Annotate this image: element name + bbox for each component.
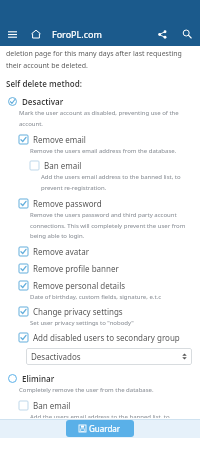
button[interactable]: Remove password bbox=[6, 197, 194, 210]
staticText: Remove the users password and third part… bbox=[30, 211, 186, 240]
button[interactable]: Guardar bbox=[66, 420, 134, 437]
staticText: Self delete method: bbox=[6, 78, 82, 89]
staticText: Set user privacy settings to "nobody" bbox=[30, 319, 186, 327]
button[interactable]: Remove email bbox=[6, 133, 194, 146]
button[interactable]: Menu bbox=[0, 22, 24, 46]
button[interactable]: Share bbox=[150, 22, 174, 46]
staticText: Date of birthday, custom fields, signatu… bbox=[30, 293, 186, 301]
staticText: Ban email bbox=[44, 160, 82, 171]
staticText: Eliminar bbox=[22, 373, 55, 384]
staticText: Add the users email address to the banne… bbox=[41, 173, 186, 192]
staticText: Desactivados bbox=[31, 351, 81, 362]
button[interactable]: Remove profile banner bbox=[6, 262, 194, 275]
staticText: Change privacy settings bbox=[33, 306, 123, 317]
staticText: deletion page for this many days after l… bbox=[6, 49, 194, 70]
staticText: Add disabled users to secondary group bbox=[33, 332, 180, 343]
button[interactable]: Home bbox=[24, 22, 48, 46]
staticText: Remove email bbox=[33, 134, 86, 145]
staticText: Remove avatar bbox=[33, 246, 90, 257]
button[interactable]: Add disabled users to secondary group bbox=[6, 331, 194, 344]
staticText: Remove profile banner bbox=[33, 263, 119, 274]
button[interactable]: Desactivados bbox=[26, 348, 192, 365]
staticText: Desactivar bbox=[22, 96, 64, 107]
button[interactable]: Ban email bbox=[6, 159, 194, 172]
staticText: Mark the user account as disabled, preve… bbox=[19, 109, 186, 128]
button[interactable]: Remove personal details bbox=[6, 279, 194, 292]
staticText: Guardar bbox=[89, 423, 121, 434]
staticText: Remove the users email address from the … bbox=[30, 147, 186, 155]
staticText: Ban email bbox=[33, 400, 71, 411]
staticText: Completely remove the user from the data… bbox=[19, 386, 186, 394]
button[interactable]: Search bbox=[174, 22, 200, 46]
button[interactable]: Desactivar bbox=[6, 95, 194, 108]
button[interactable]: Change privacy settings bbox=[6, 305, 194, 318]
staticText: ForoPL.com bbox=[52, 28, 102, 40]
button[interactable]: Ban email bbox=[6, 399, 194, 412]
staticText: Remove password bbox=[33, 198, 102, 209]
button[interactable]: Eliminar bbox=[6, 372, 194, 385]
staticText: Remove personal details bbox=[33, 280, 126, 291]
button[interactable]: Remove avatar bbox=[6, 245, 194, 258]
staticText: Add the users email address to the banne… bbox=[30, 413, 186, 418]
